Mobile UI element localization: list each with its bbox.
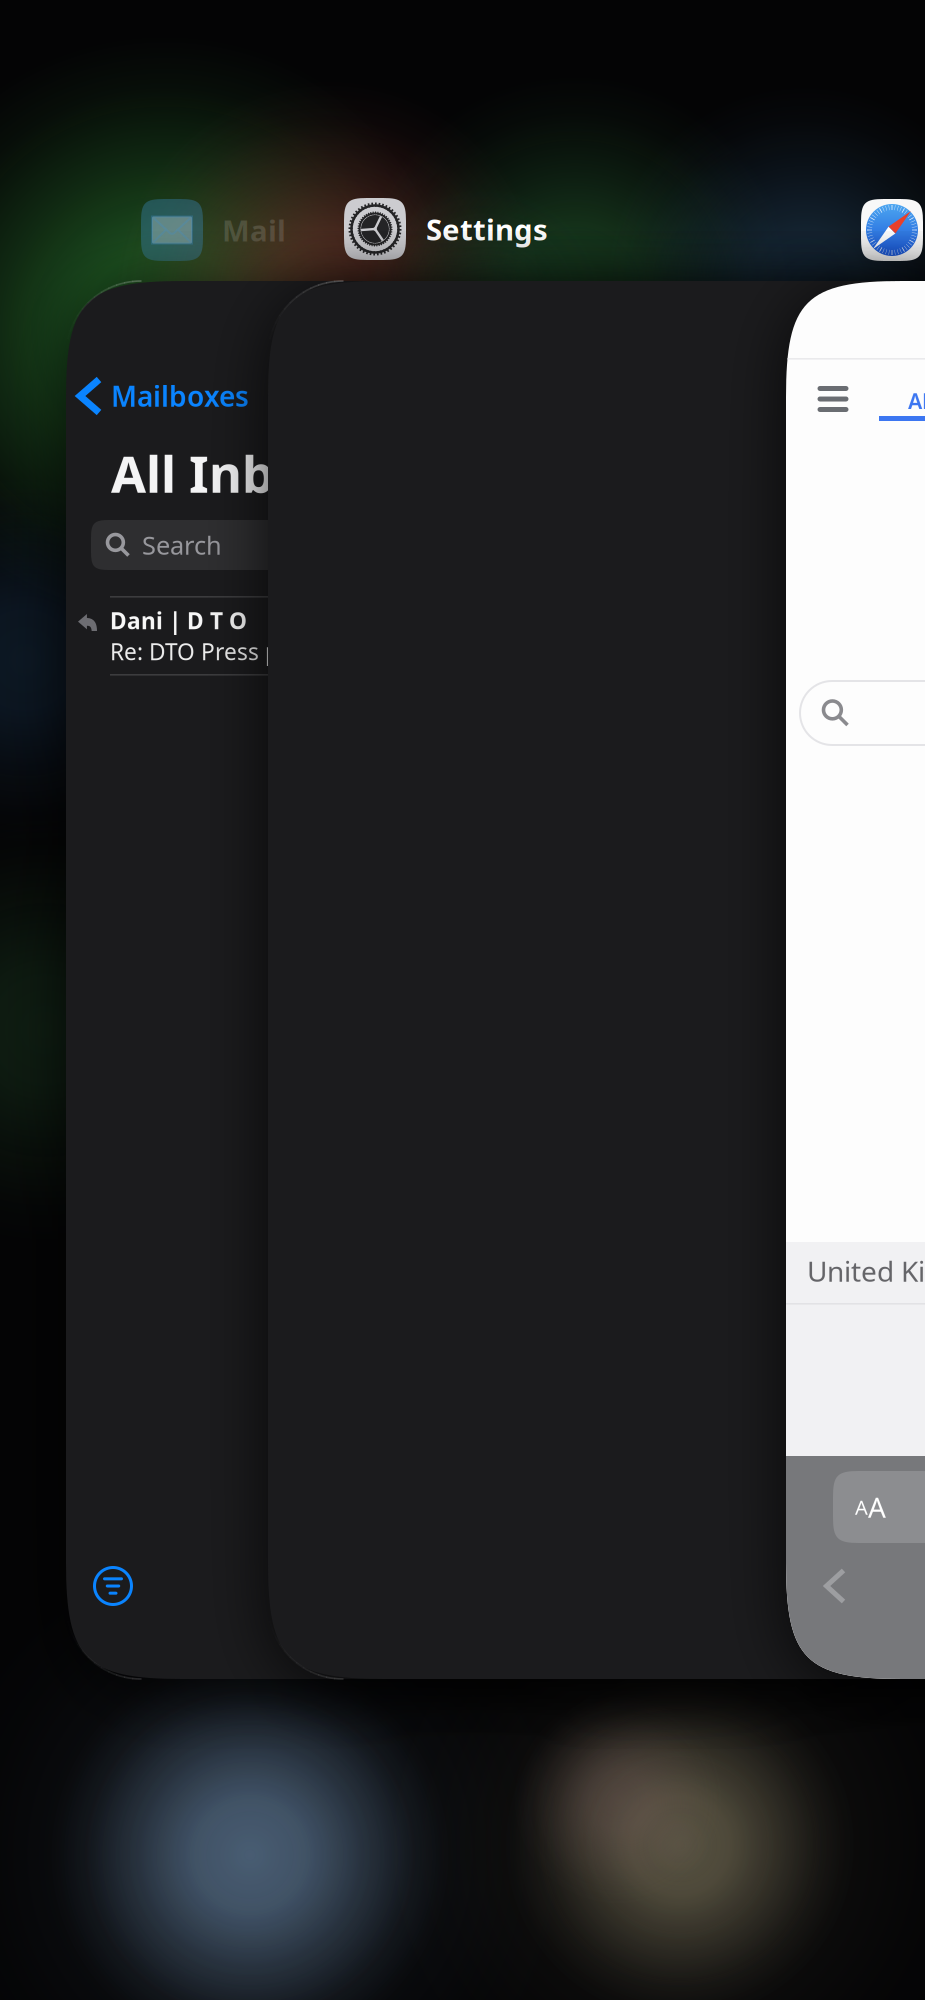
button[interactable]: Safari (861, 199, 923, 261)
button[interactable]: Back (808, 1559, 862, 1613)
staticText: Mail (222, 210, 286, 249)
staticText: Search (142, 528, 222, 562)
button[interactable]: Filter (87, 1560, 139, 1612)
button[interactable]: Page settings (833, 1471, 925, 1543)
button[interactable]: Mail (141, 199, 321, 261)
button[interactable]: ALL (879, 386, 925, 436)
button[interactable]: Settings (268, 281, 925, 1679)
staticText: Re: DTO Press pack and imagery (110, 636, 456, 667)
button[interactable]: Mail (66, 281, 925, 1679)
button[interactable]: Safari (786, 281, 925, 1679)
staticText: United Kingdom (807, 1252, 925, 1290)
staticText: Dani | D T O (110, 605, 247, 635)
staticText: Settings (426, 209, 548, 248)
button[interactable]: Mailboxes (80, 370, 380, 422)
staticText: Mailboxes (111, 377, 249, 415)
staticText: A (868, 1488, 886, 1526)
button[interactable]: Search (800, 681, 925, 745)
staticText: All Inbox (111, 439, 334, 507)
button[interactable]: Settings (344, 198, 604, 260)
staticText: A (855, 1494, 868, 1520)
staticText: ALL (908, 387, 925, 415)
button[interactable]: Menu (805, 375, 861, 423)
